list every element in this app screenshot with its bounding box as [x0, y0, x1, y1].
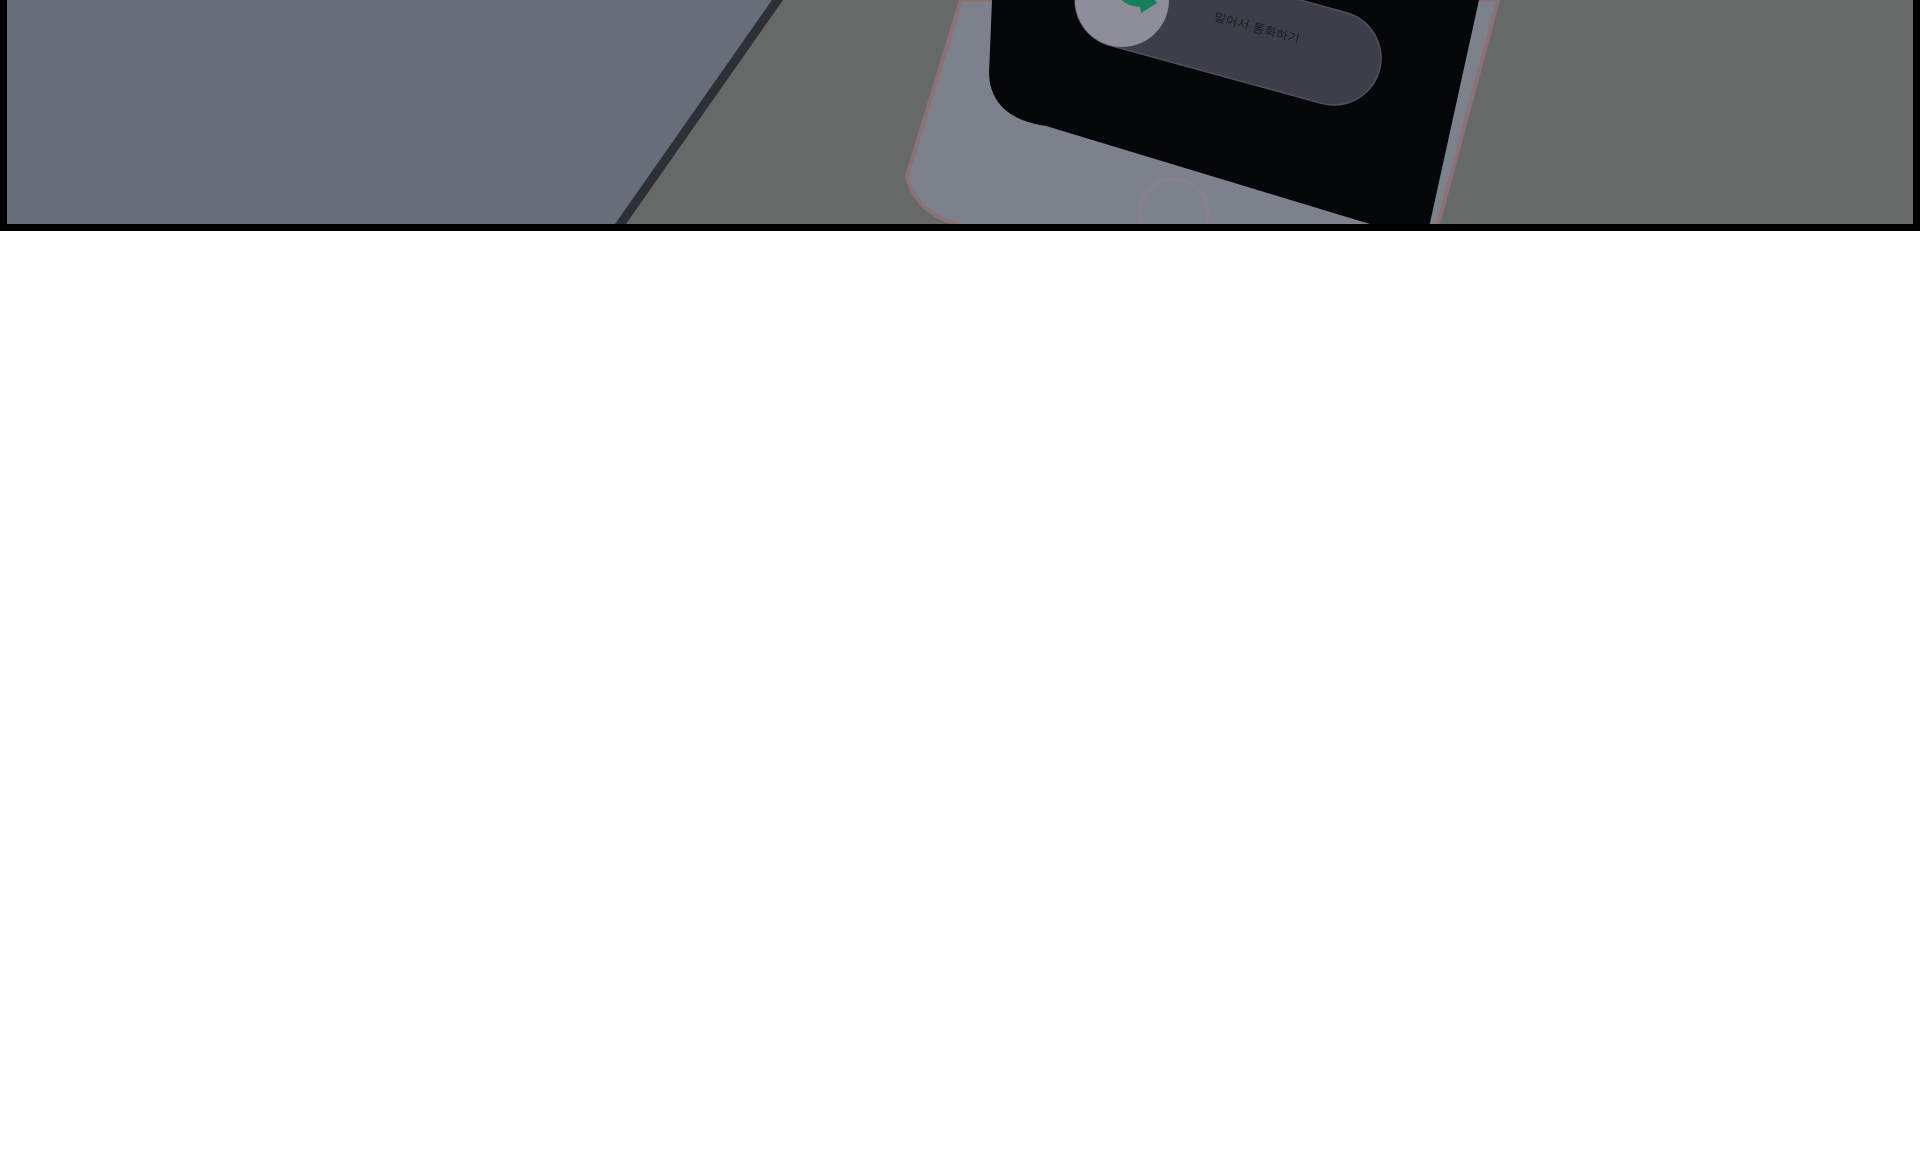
- staticText: 밀어서 통화하기: [1213, 20, 1301, 35]
